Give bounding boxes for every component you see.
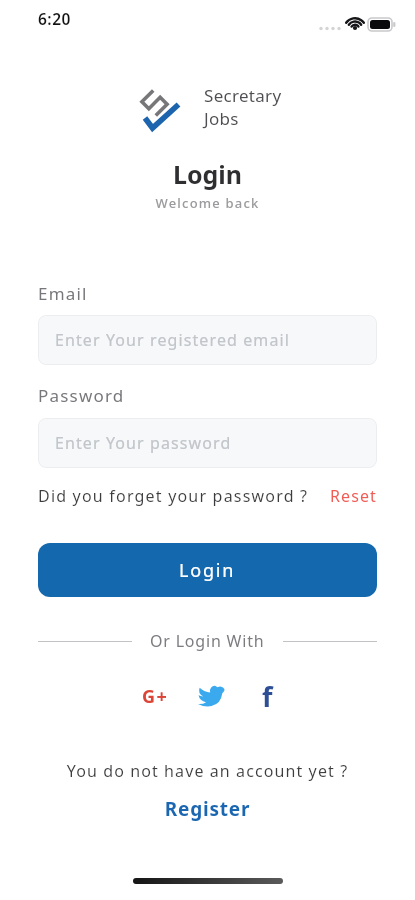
button[interactable]: Login (38, 543, 377, 597)
staticText: Welcome back (0, 194, 415, 212)
staticText: 6:20 (38, 8, 71, 29)
staticText: Or Login With (150, 630, 265, 652)
button[interactable]: Enter Your registered email (38, 315, 377, 365)
button[interactable]: Register (0, 796, 415, 822)
staticText: Password (38, 384, 125, 407)
staticText: Enter Your registered email (55, 329, 290, 351)
staticText: Email (38, 282, 88, 305)
staticText: Secretary (204, 84, 282, 107)
staticText: G+ (142, 684, 169, 709)
button[interactable]: f (245, 674, 289, 718)
staticText: Enter Your password (55, 432, 232, 454)
staticText: Did you forget your password ? (38, 485, 309, 507)
staticText: f (262, 678, 273, 715)
button[interactable]: Reset (330, 485, 377, 507)
button[interactable]: G+ (133, 674, 177, 718)
staticText: Jobs (204, 107, 239, 130)
staticText: You do not have an account yet ? (0, 760, 415, 782)
staticText: Login (0, 157, 415, 191)
button[interactable] (189, 674, 233, 718)
button[interactable]: Enter Your password (38, 418, 377, 468)
staticText: Login (179, 558, 236, 583)
